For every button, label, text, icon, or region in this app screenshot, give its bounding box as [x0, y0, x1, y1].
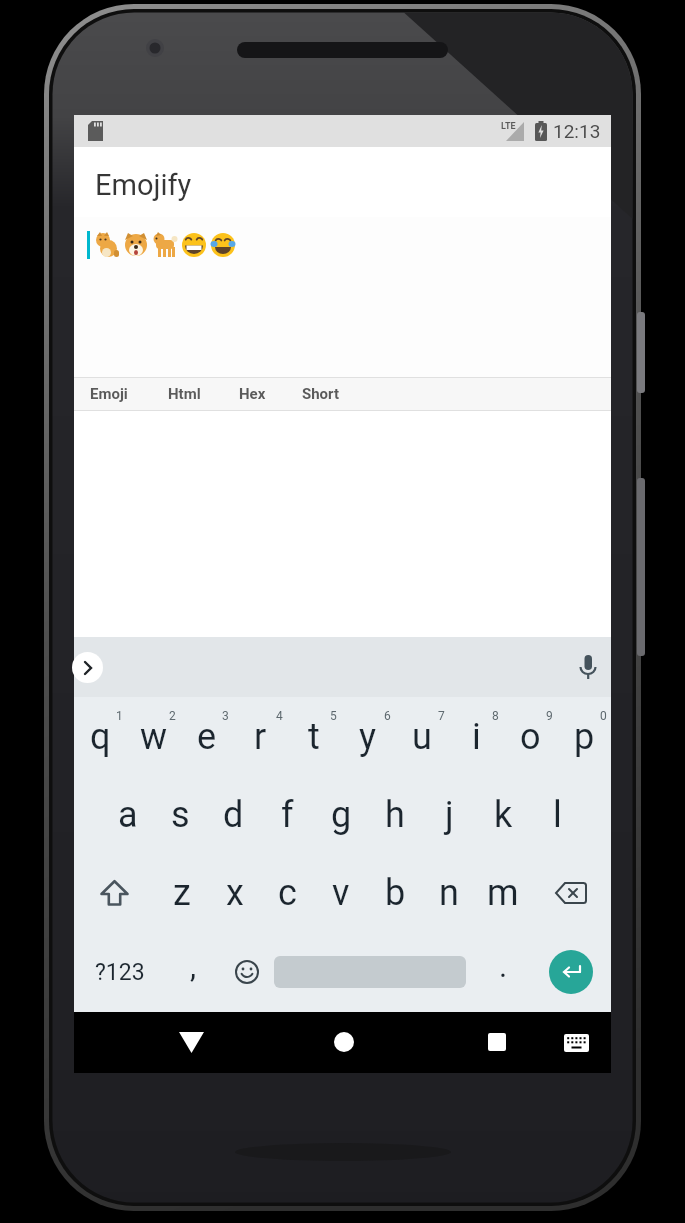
button[interactable]: q [74, 697, 127, 776]
button[interactable] [74, 217, 611, 377]
button[interactable]: ?123 [74, 932, 166, 1012]
staticText: c [278, 872, 297, 914]
staticText: e [197, 716, 217, 758]
staticText: l [553, 794, 562, 836]
staticText: 6 [384, 709, 391, 723]
staticText: . [499, 948, 508, 984]
staticText: 0 [600, 709, 607, 723]
staticText: r [254, 716, 267, 758]
staticText: h [385, 794, 405, 836]
button[interactable]: z [155, 854, 208, 932]
button[interactable]: , [166, 932, 220, 1012]
button[interactable]: r [233, 697, 287, 776]
button[interactable]: i [449, 697, 503, 776]
staticText: 12:13 [553, 120, 601, 142]
staticText: a [118, 794, 138, 836]
staticText: s [171, 794, 190, 836]
staticText: Html [168, 385, 201, 403]
staticText: w [140, 716, 168, 758]
button[interactable]: Short [300, 378, 342, 410]
button[interactable] [329, 1028, 359, 1056]
button[interactable] [74, 854, 155, 932]
staticText: b [385, 872, 406, 914]
staticText: , [190, 948, 197, 984]
staticText: 5 [330, 709, 337, 723]
staticText: LTE [501, 121, 516, 132]
staticText: k [494, 794, 513, 836]
button[interactable]: b [368, 854, 422, 932]
button[interactable]: v [314, 854, 368, 932]
button[interactable]: f [260, 776, 314, 854]
staticText: Emojify [95, 168, 192, 202]
button[interactable] [578, 655, 598, 681]
staticText: v [332, 872, 350, 914]
button[interactable]: Hex [237, 378, 268, 410]
staticText: d [223, 794, 244, 836]
button[interactable] [549, 950, 593, 994]
staticText: p [574, 716, 595, 758]
button[interactable]: y [341, 697, 395, 776]
staticText: j [445, 794, 454, 836]
staticText: z [173, 872, 191, 914]
staticText: 7 [438, 709, 445, 723]
button[interactable]: l [530, 776, 584, 854]
staticText: ?123 [95, 959, 145, 986]
staticText: 9 [546, 709, 553, 723]
button[interactable]: x [208, 854, 261, 932]
button[interactable]: . [476, 932, 530, 1012]
button[interactable]: c [261, 854, 314, 932]
staticText: 2 [169, 709, 176, 723]
staticText: o [520, 716, 541, 758]
staticText: m [487, 872, 519, 914]
button[interactable]: s [154, 776, 207, 854]
staticText: n [439, 872, 459, 914]
staticText: f [281, 794, 294, 836]
button[interactable] [177, 1029, 205, 1055]
button[interactable]: e [180, 697, 233, 776]
button[interactable]: n [422, 854, 476, 932]
button[interactable] [530, 854, 611, 932]
button[interactable]: u [395, 697, 449, 776]
staticText: i [472, 716, 481, 758]
button[interactable]: h [368, 776, 422, 854]
staticText: 4 [276, 709, 283, 723]
staticText: 8 [492, 709, 499, 723]
button[interactable] [562, 1032, 590, 1054]
button[interactable]: t [287, 697, 341, 776]
button[interactable]: o [503, 697, 557, 776]
staticText: g [331, 794, 352, 836]
button[interactable]: k [476, 776, 530, 854]
staticText: Emoji [90, 385, 128, 403]
button[interactable] [72, 652, 103, 683]
staticText: x [226, 872, 244, 914]
staticText: y [359, 716, 377, 758]
button[interactable]: d [207, 776, 260, 854]
button[interactable]: p [557, 697, 611, 776]
button[interactable]: a [101, 776, 154, 854]
button[interactable]: Html [166, 378, 203, 410]
button[interactable]: m [476, 854, 530, 932]
staticText: 3 [222, 709, 229, 723]
button[interactable]: g [314, 776, 368, 854]
button[interactable] [482, 1028, 512, 1056]
staticText: t [308, 716, 320, 758]
staticText: Short [302, 385, 340, 403]
staticText: Hex [239, 385, 266, 403]
button[interactable]: Emoji [88, 378, 130, 410]
button[interactable]: w [127, 697, 180, 776]
button[interactable] [220, 932, 274, 1012]
staticText: u [412, 716, 432, 758]
staticText: 1 [116, 709, 123, 723]
button[interactable]: j [422, 776, 476, 854]
staticText: q [90, 716, 111, 758]
